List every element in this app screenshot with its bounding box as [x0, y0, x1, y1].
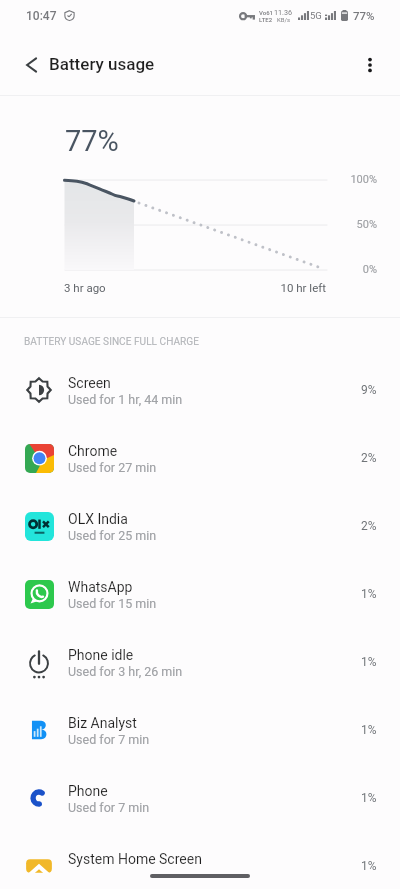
staticText: 1% [361, 655, 377, 669]
staticText: 0% [329, 263, 377, 276]
staticText: 1% [361, 587, 377, 601]
button[interactable]: System Home Screen [0, 832, 400, 889]
button[interactable]: Screen [0, 356, 400, 424]
staticText: 9% [361, 383, 377, 397]
staticText: Used for 27 min [68, 460, 157, 475]
staticText: Used for 15 min [68, 596, 157, 611]
staticText: Used for 25 min [68, 528, 157, 543]
staticText: Used for 1 hr, 44 min [68, 392, 183, 407]
button[interactable]: WhatsApp [0, 560, 400, 628]
staticText: BATTERY USAGE SINCE FULL CHARGE [24, 336, 199, 348]
staticText: Vo61 [259, 9, 273, 16]
staticText: Phone idle [68, 647, 134, 663]
staticText: KB/s [277, 16, 291, 23]
staticText: System Home Screen [68, 851, 202, 867]
staticText: Used for 3 hr, 26 min [68, 664, 183, 679]
staticText: 50% [329, 218, 377, 231]
staticText: 1% [361, 791, 377, 805]
button[interactable]: Chrome [0, 424, 400, 492]
staticText: Biz Analyst [68, 715, 137, 731]
staticText: 2% [361, 451, 377, 465]
staticText: 5G [310, 10, 322, 21]
staticText: 10:47 [26, 9, 57, 23]
staticText: 77% [353, 9, 375, 22]
staticText: WhatsApp [68, 579, 133, 595]
staticText: 11.36 [274, 8, 293, 16]
staticText: 3 hr ago [64, 281, 106, 294]
button[interactable]: Phone [0, 764, 400, 832]
staticText: Used for 7 min [68, 732, 150, 747]
staticText: 1% [361, 723, 377, 737]
staticText: 100% [329, 173, 377, 186]
staticText: Used for 7 min [68, 800, 150, 815]
button[interactable]: OLX India [0, 492, 400, 560]
staticText: Chrome [68, 443, 118, 459]
staticText: 2% [361, 519, 377, 533]
button[interactable]: Biz Analyst [0, 696, 400, 764]
staticText: 1% [361, 859, 377, 873]
staticText: 77% [65, 124, 119, 158]
button[interactable]: Phone idle [0, 628, 400, 696]
button[interactable]: More options [350, 45, 390, 85]
staticText: Phone [68, 783, 108, 799]
staticText: OLX India [68, 511, 128, 527]
staticText: 10 hr left [230, 281, 326, 294]
staticText: Battery usage [49, 54, 155, 74]
staticText: LTE2 [259, 16, 273, 23]
button[interactable]: Back [11, 45, 51, 85]
staticText: Screen [68, 375, 111, 391]
